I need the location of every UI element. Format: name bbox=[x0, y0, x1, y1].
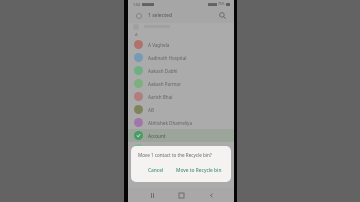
staticText: Account bbox=[148, 133, 166, 139]
staticText: Abhishek Dhameliya bbox=[148, 120, 193, 126]
button[interactable]: A Vaghela bbox=[128, 38, 234, 51]
button[interactable]: Search bbox=[216, 9, 229, 22]
button[interactable]: Agro bbox=[128, 142, 234, 155]
staticText: Aadinath Hospital bbox=[148, 55, 187, 61]
staticText: A bbox=[135, 32, 138, 37]
button[interactable]: Account bbox=[128, 129, 234, 142]
staticText: Move to Recycle bin bbox=[176, 167, 222, 174]
button[interactable] bbox=[133, 10, 145, 22]
button[interactable]: Aadinath Hospital bbox=[128, 51, 234, 64]
staticText: Aakash Parmar bbox=[148, 81, 181, 87]
staticText: A Vaghela bbox=[148, 42, 170, 48]
staticText: 1:04 bbox=[133, 2, 140, 7]
staticText: Move 1 contact to the Recycle bin? bbox=[138, 152, 212, 158]
button[interactable]: Home bbox=[175, 189, 187, 201]
button[interactable]: Move to Recycle bin bbox=[174, 165, 224, 176]
button[interactable]: Aakash Parmar bbox=[128, 77, 234, 90]
staticText: 1 selected bbox=[148, 12, 173, 19]
staticText: 76% bbox=[218, 2, 225, 6]
button[interactable]: Aakash Dabhi bbox=[128, 64, 234, 77]
button[interactable]: AB bbox=[128, 103, 234, 116]
button[interactable]: Abhishek Dhameliya bbox=[128, 116, 234, 129]
button[interactable]: Aarish Bhai bbox=[128, 90, 234, 103]
staticText: Cancel bbox=[148, 167, 164, 174]
staticText: Aarish Bhai bbox=[148, 94, 173, 100]
button[interactable]: Back bbox=[205, 189, 217, 201]
button[interactable]: Recent apps bbox=[146, 189, 158, 201]
button[interactable]: Ajay bbox=[128, 155, 234, 168]
staticText: AB bbox=[148, 107, 154, 113]
staticText: Aakash Dabhi bbox=[148, 68, 178, 74]
button[interactable]: Cancel bbox=[138, 165, 174, 176]
